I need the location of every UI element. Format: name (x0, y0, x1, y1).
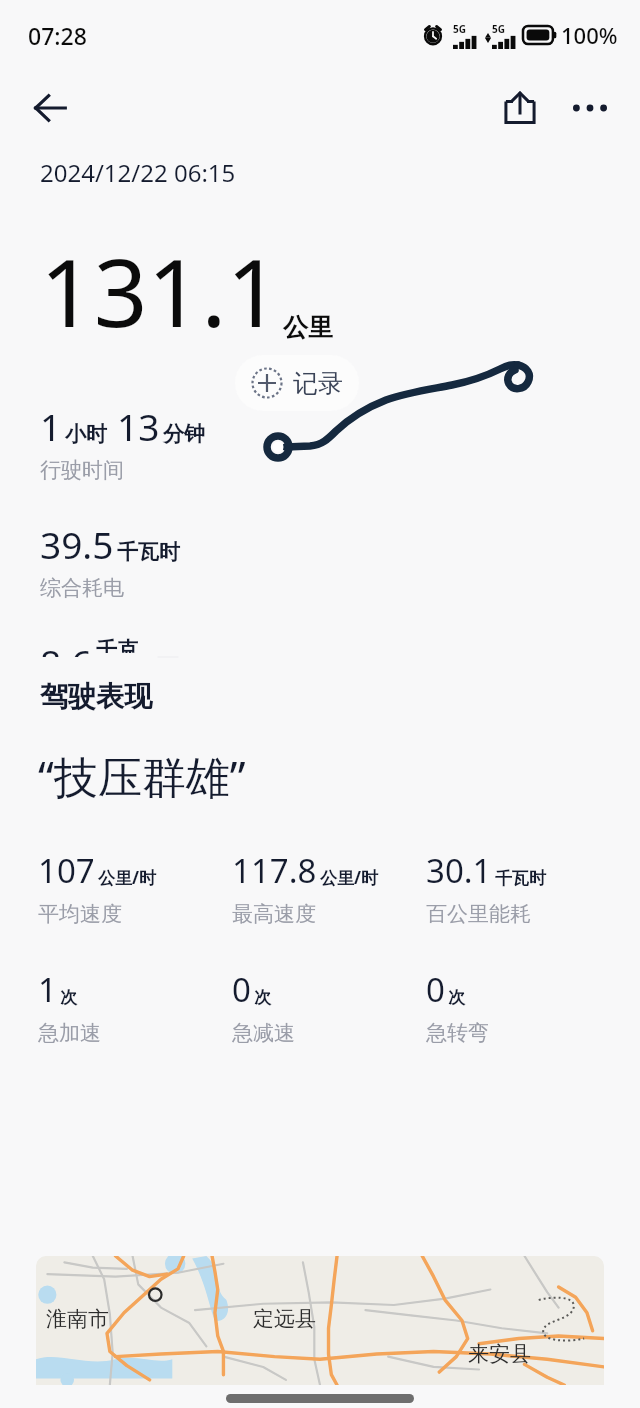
staticText: 千瓦时 (117, 539, 180, 565)
staticText: 07:28 (28, 20, 87, 51)
staticText: 记录 (293, 368, 343, 399)
staticText: 淮南市 (46, 1306, 109, 1332)
staticText: 次 (60, 987, 77, 1008)
button[interactable]: More options (562, 80, 618, 136)
staticText: 最高速度 (232, 901, 316, 927)
staticText: 急减速 (232, 1020, 295, 1046)
staticText: 平均速度 (38, 901, 122, 927)
staticText: 急加速 (38, 1020, 101, 1046)
staticText: 30.1 (426, 848, 492, 893)
staticText: 100% (561, 20, 618, 50)
staticText: 分钟 (163, 421, 205, 447)
staticText: 公里/时 (320, 866, 379, 889)
staticText: 1 (38, 967, 57, 1012)
staticText: 公里 (283, 312, 333, 343)
staticText: 千克 (96, 637, 138, 653)
button[interactable]: Back (22, 80, 78, 136)
button[interactable]: 记录 (235, 355, 359, 411)
button[interactable]: 淮南市 (36, 1256, 604, 1385)
staticText: 公里/时 (98, 866, 157, 889)
staticText: 107 (38, 848, 95, 893)
staticText: 驾驶表现 (40, 679, 152, 714)
staticText: 2024/12/22 06:15 (40, 156, 236, 189)
staticText: 定远县 (253, 1306, 316, 1332)
staticText: 5G (453, 22, 466, 36)
staticText: 0 (426, 967, 445, 1012)
staticText: 来安县 (468, 1341, 531, 1367)
button[interactable]: Share (492, 80, 548, 136)
staticText: “技压群雄” (38, 746, 246, 806)
staticText: 1 (40, 401, 62, 451)
staticText: 急转弯 (426, 1020, 489, 1046)
staticText: 8.6 (40, 637, 93, 657)
staticText: 综合耗电 (40, 575, 124, 601)
staticText: 百公里能耗 (426, 901, 531, 927)
staticText: 39.5 (40, 519, 114, 569)
staticText: 117.8 (232, 848, 317, 893)
staticText: 5G (492, 22, 505, 36)
staticText: 次 (254, 987, 271, 1008)
staticText: 行驶时间 (40, 457, 124, 483)
staticText: 千瓦时 (495, 868, 546, 889)
staticText: 131.1 (40, 227, 281, 355)
staticText: 小时 (65, 421, 107, 447)
staticText: 13 (117, 401, 160, 451)
staticText: 0 (232, 967, 251, 1012)
staticText: 次 (448, 987, 465, 1008)
